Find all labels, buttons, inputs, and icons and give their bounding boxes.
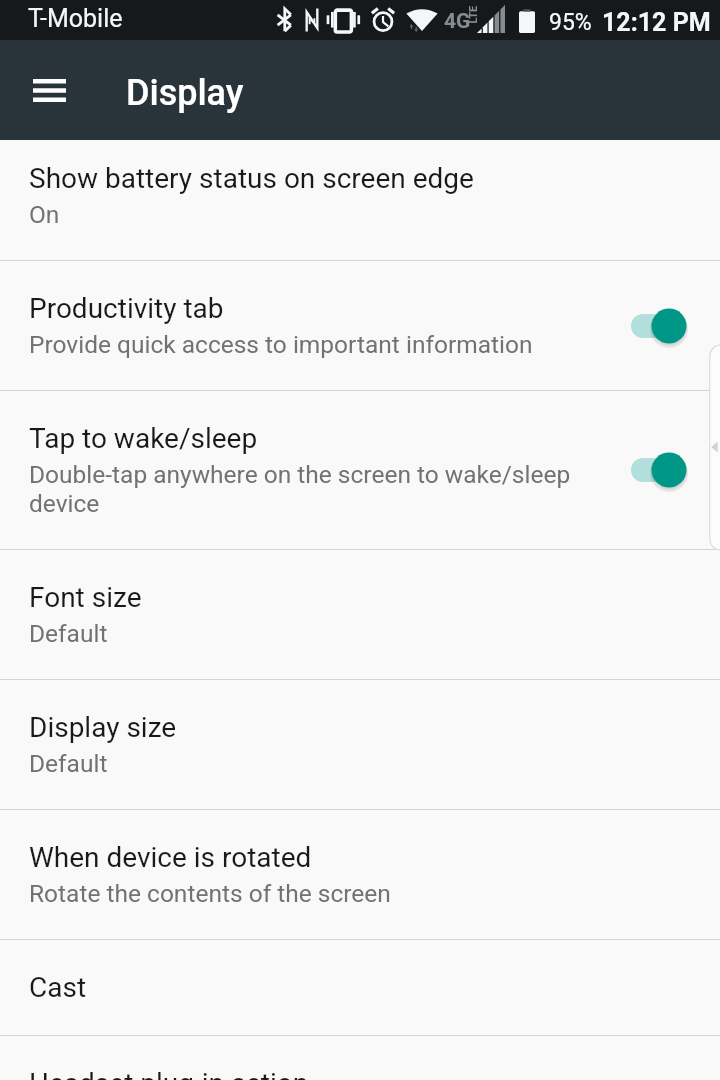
staticText: T-Mobile (28, 4, 123, 33)
staticText: Productivity tab (29, 292, 224, 325)
staticText: Tap to wake/sleep (29, 422, 258, 455)
button[interactable]: Edge panel handle (709, 344, 720, 551)
button[interactable]: Headset plug-in action (0, 1036, 720, 1080)
button[interactable]: When device is rotated (0, 810, 720, 939)
staticText: 95% (549, 9, 592, 36)
staticText: 4G (444, 9, 471, 34)
staticText: Rotate the contents of the screen (29, 879, 391, 908)
staticText: When device is rotated (29, 841, 312, 874)
button[interactable]: Show battery status on screen edge (0, 140, 720, 260)
staticText: Cast (29, 971, 87, 1004)
staticText: Double-tap anywhere on the screen to wak… (29, 460, 595, 518)
button[interactable]: Tap to wake/sleep (0, 391, 720, 549)
button[interactable]: Toggle Productivity tab (625, 302, 687, 350)
button[interactable]: Open navigation drawer (16, 57, 82, 123)
staticText: 12:12 PM (602, 8, 711, 37)
staticText: Default (29, 619, 108, 648)
staticText: Font size (29, 581, 142, 614)
staticText: On (29, 200, 60, 229)
staticText: Headset plug-in action (29, 1067, 309, 1080)
staticText: Provide quick access to important inform… (29, 330, 533, 359)
button[interactable]: Cast (0, 940, 720, 1035)
staticText: LTE (466, 5, 479, 23)
button[interactable]: Font size (0, 550, 720, 679)
staticText: Display size (29, 711, 177, 744)
button[interactable]: Display size (0, 680, 720, 809)
button[interactable]: Productivity tab (0, 261, 720, 390)
staticText: Show battery status on screen edge (29, 162, 474, 195)
staticText: Default (29, 749, 108, 778)
staticText: Display (126, 72, 244, 114)
button[interactable]: Toggle Tap to wake/sleep (625, 446, 687, 494)
